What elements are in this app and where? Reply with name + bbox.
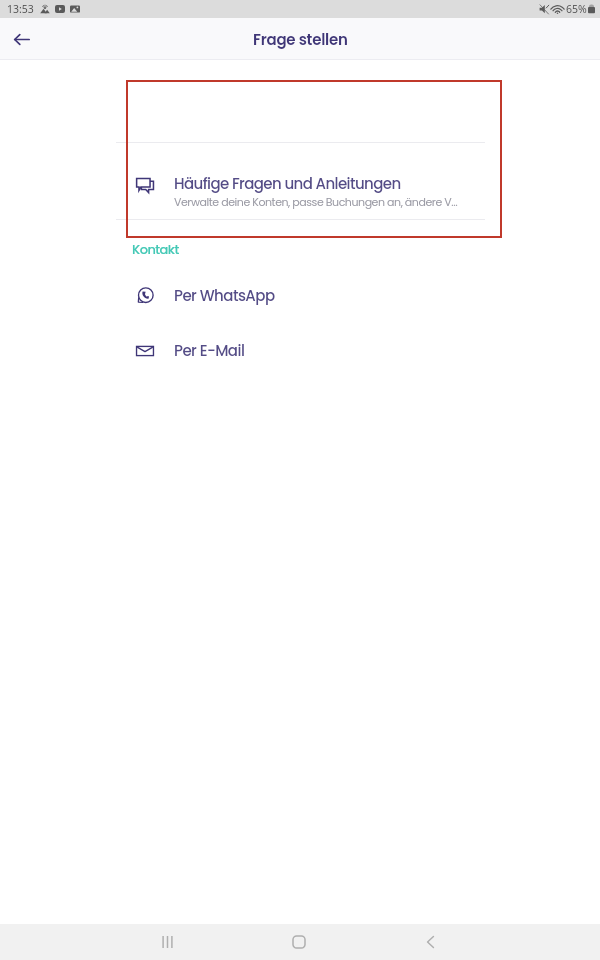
button[interactable]: Per E-Mail	[0, 329, 600, 373]
staticText: Per E-Mail	[174, 340, 245, 361]
button[interactable]: Back	[4, 22, 38, 56]
staticText: 65%	[566, 2, 587, 16]
staticText: Per WhatsApp	[174, 285, 275, 306]
button[interactable]: Home	[279, 924, 319, 960]
staticText: 13:53	[7, 2, 34, 16]
button[interactable]: Per WhatsApp	[0, 274, 600, 318]
button[interactable]: Häufige Fragen und Anleitungen	[0, 143, 600, 219]
button[interactable]: Recent apps	[147, 924, 187, 960]
staticText: Häufige Fragen und Anleitungen	[174, 173, 401, 194]
staticText: Verwalte deine Konten, passe Buchungen a…	[174, 194, 458, 209]
button[interactable]: Back	[410, 924, 450, 960]
staticText: Kontakt	[132, 240, 179, 258]
staticText: Frage stellen	[253, 29, 348, 50]
